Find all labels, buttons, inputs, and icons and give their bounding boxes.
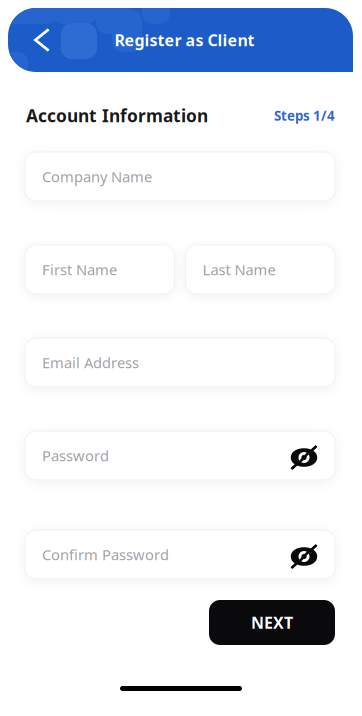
button[interactable]: NEXT <box>209 600 335 645</box>
staticText: Email Address <box>42 353 139 372</box>
staticText: First Name <box>42 260 117 279</box>
button[interactable]: Back <box>22 8 62 72</box>
button[interactable]: Show password <box>290 541 318 567</box>
staticText: Account Information <box>26 104 208 127</box>
button[interactable]: Show password <box>290 442 318 468</box>
staticText: Steps 1/4 <box>274 107 335 124</box>
staticText: Company Name <box>42 167 152 186</box>
staticText: Register as Client <box>114 29 254 51</box>
staticText: NEXT <box>251 612 293 633</box>
staticText: Confirm Password <box>42 545 169 564</box>
staticText: Last Name <box>202 260 275 279</box>
staticText: Password <box>42 446 109 465</box>
